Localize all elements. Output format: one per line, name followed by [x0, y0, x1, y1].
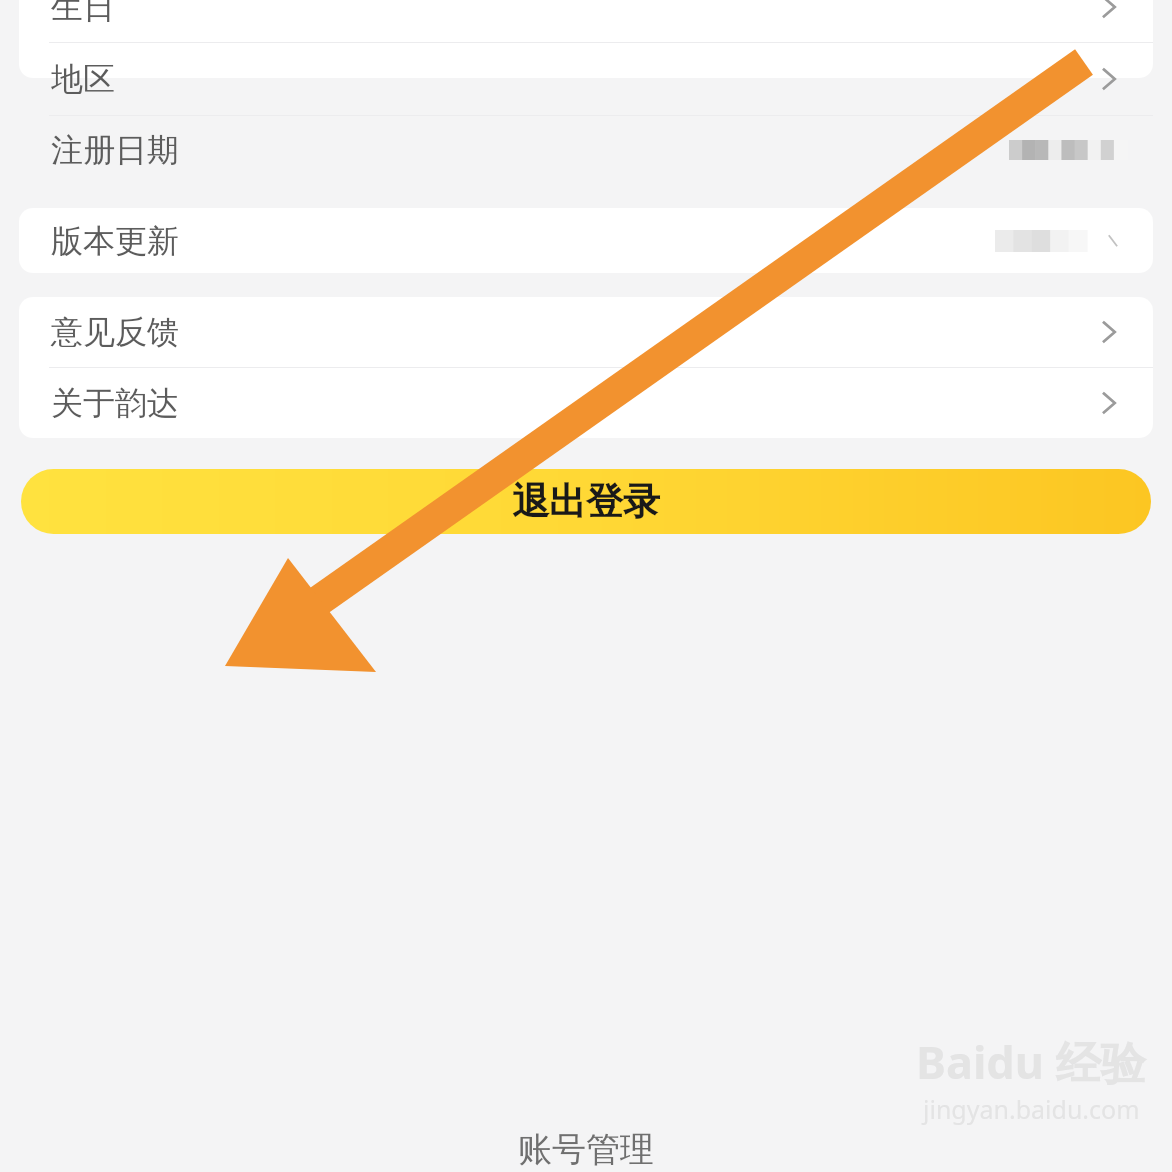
staticText: jingyan.baidu.com — [923, 1092, 1140, 1126]
staticText: 版本更新 — [51, 221, 179, 261]
staticText: 地区 — [51, 59, 115, 99]
staticText: 生日 — [51, 0, 115, 27]
button[interactable]: 退出登录 — [21, 469, 1151, 534]
staticText: Baidu 经验 — [916, 1031, 1146, 1092]
button[interactable]: 生日 — [19, 0, 1153, 42]
button[interactable]: 版本更新 — [19, 208, 1153, 273]
button[interactable]: 地区 — [19, 43, 1153, 115]
button[interactable]: 注册日期 — [19, 116, 1153, 184]
staticText: 退出登录 — [512, 478, 660, 525]
staticText: 意见反馈 — [51, 312, 179, 352]
staticText: 账号管理 — [0, 1128, 1172, 1171]
button[interactable]: 意见反馈 — [19, 297, 1153, 367]
button[interactable]: 关于韵达 — [19, 368, 1153, 438]
staticText: 注册日期 — [51, 130, 179, 170]
staticText: 关于韵达 — [51, 383, 179, 423]
